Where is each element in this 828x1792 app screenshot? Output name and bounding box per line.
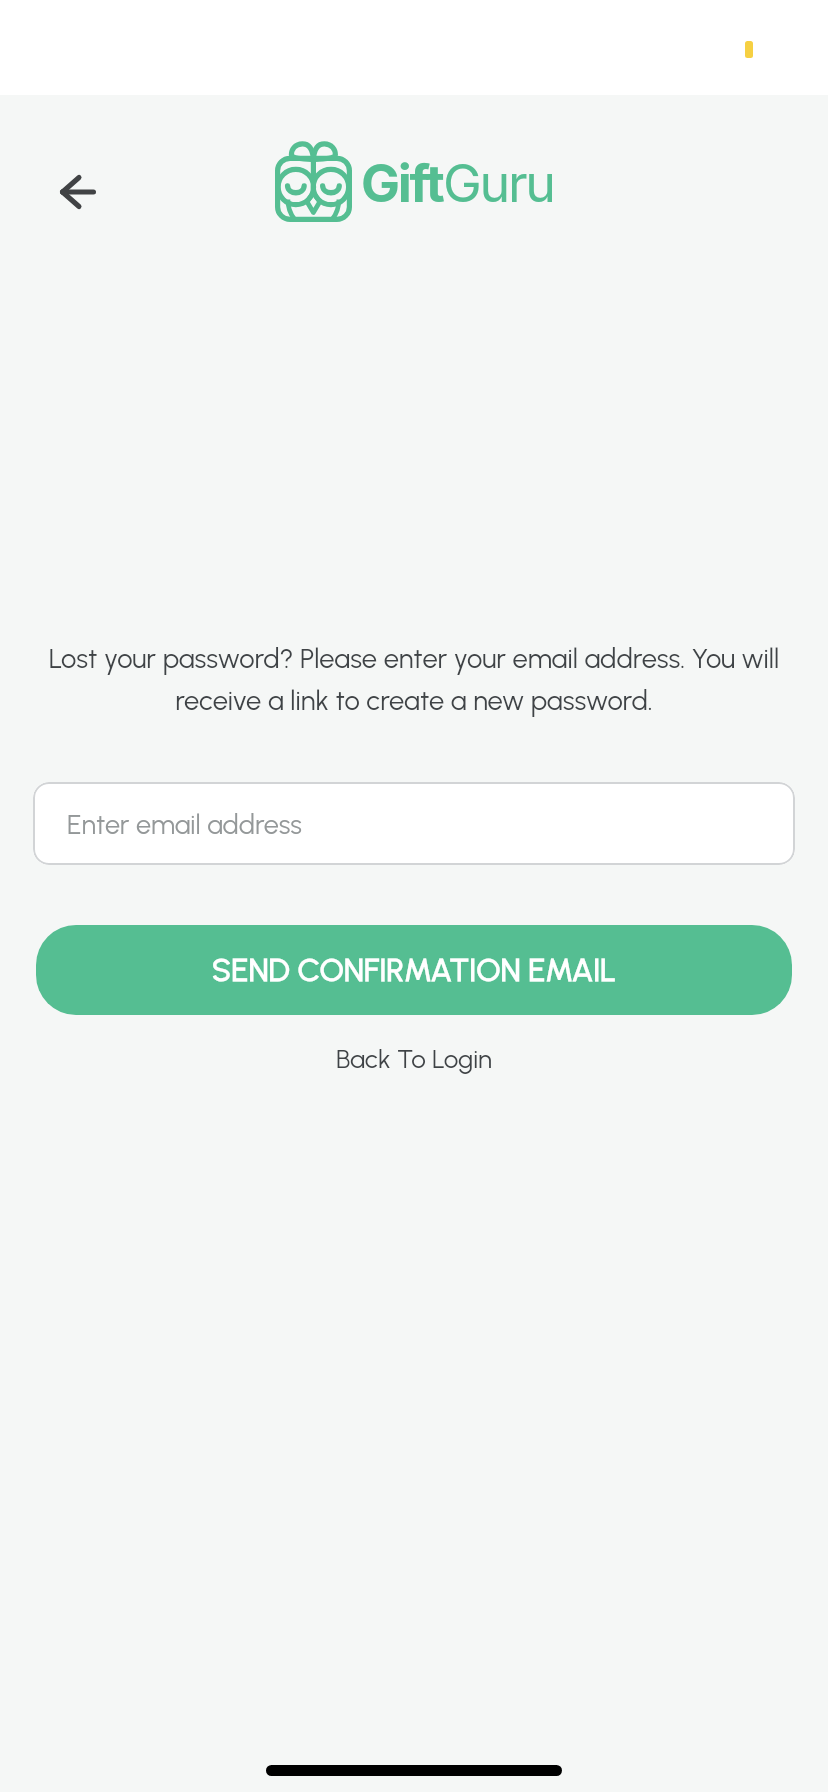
staticText: Guru: [443, 152, 554, 215]
button[interactable]: Enter email address: [33, 782, 795, 865]
staticText: Back To Login: [336, 1043, 493, 1074]
staticText: Enter email address: [67, 808, 302, 840]
staticText: SEND CONFIRMATION EMAIL: [212, 952, 617, 989]
staticText: Gift: [361, 152, 443, 215]
button[interactable]: SEND CONFIRMATION EMAIL: [36, 925, 792, 1015]
staticText: Lost your password? Please enter your em…: [28, 642, 800, 717]
button[interactable]: Back To Login: [322, 1035, 507, 1082]
button[interactable]: Back: [42, 160, 114, 224]
